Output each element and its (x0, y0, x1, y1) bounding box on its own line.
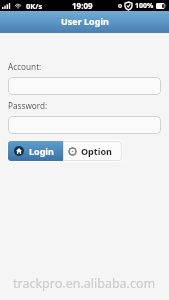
staticText: 19:09 (72, 0, 93, 11)
button[interactable] (8, 77, 161, 95)
staticText: 100% (135, 1, 154, 11)
staticText: 0K/s (26, 1, 43, 11)
button[interactable] (8, 116, 161, 134)
staticText: trackpro.en.alibaba.com (13, 275, 156, 292)
staticText: Login (29, 145, 54, 157)
staticText: User Login (61, 15, 109, 27)
button[interactable]: Options (63, 141, 122, 161)
staticText: Option (81, 145, 112, 157)
staticText: Password: (8, 100, 48, 111)
staticText: Account: (8, 61, 42, 72)
other: Options (68, 147, 77, 156)
button[interactable]: Login (8, 141, 63, 161)
